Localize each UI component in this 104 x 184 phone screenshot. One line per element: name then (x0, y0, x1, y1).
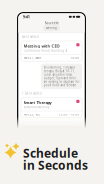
button[interactable]: Meeting with CEO (21, 41, 82, 61)
staticText: Evening (46, 26, 57, 30)
staticText: 1 Event added (22, 92, 42, 95)
staticText: Scuttle (44, 20, 58, 25)
staticText: Conference Room, Building A (23, 49, 67, 52)
staticText: 09:00 - 10:00 (58, 113, 79, 116)
staticText: 9:41 (23, 14, 30, 19)
staticText: This morning, I'm Jakob therapy. Busy at… (43, 66, 79, 87)
staticText: Tomorrow morning (23, 105, 49, 109)
staticText: Nov 22, Tue (23, 113, 40, 116)
staticText: Schedule (23, 145, 78, 161)
staticText: Nov 21, Mon (23, 56, 41, 60)
staticText: in Seconds (23, 157, 88, 173)
staticText: Meeting with CEO (23, 43, 59, 48)
staticText: Event added (22, 35, 39, 38)
button[interactable]: Smart Therapy (21, 98, 82, 118)
staticText: 10:00 (70, 56, 79, 60)
staticText: Smart Therapy (23, 100, 51, 105)
